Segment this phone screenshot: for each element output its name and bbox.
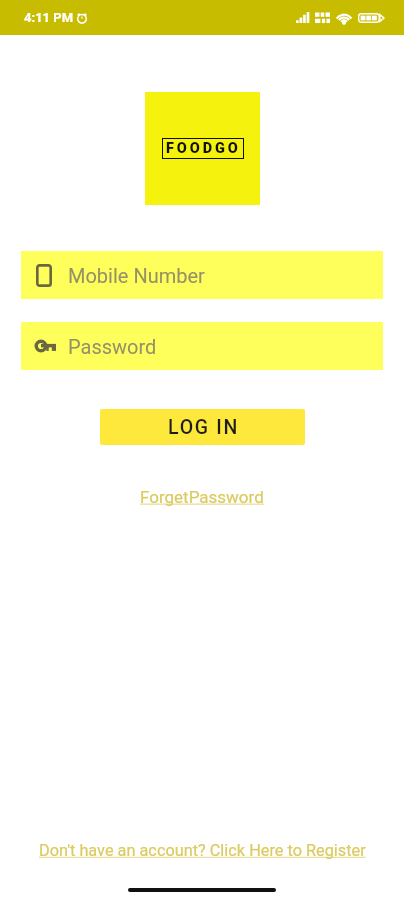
staticText: Don't have an account? Click Here to Reg…	[39, 841, 366, 860]
button[interactable]: ForgetPassword	[136, 483, 268, 511]
button[interactable]: Password	[21, 322, 383, 370]
staticText: LOG IN	[168, 416, 240, 439]
button[interactable]: Mobile number	[21, 251, 383, 299]
staticText: ForgetPassword	[140, 487, 264, 507]
staticText: Password	[68, 335, 157, 358]
other: Password	[36, 339, 68, 353]
staticText: FOODGO	[166, 140, 241, 157]
other: Mobile number	[36, 264, 68, 287]
staticText: Mobile Number	[68, 264, 205, 287]
staticText: 4:11 PM	[24, 10, 74, 25]
button[interactable]: LOG IN	[100, 409, 305, 445]
button[interactable]: Don't have an account? Click Here to Reg…	[35, 837, 370, 864]
